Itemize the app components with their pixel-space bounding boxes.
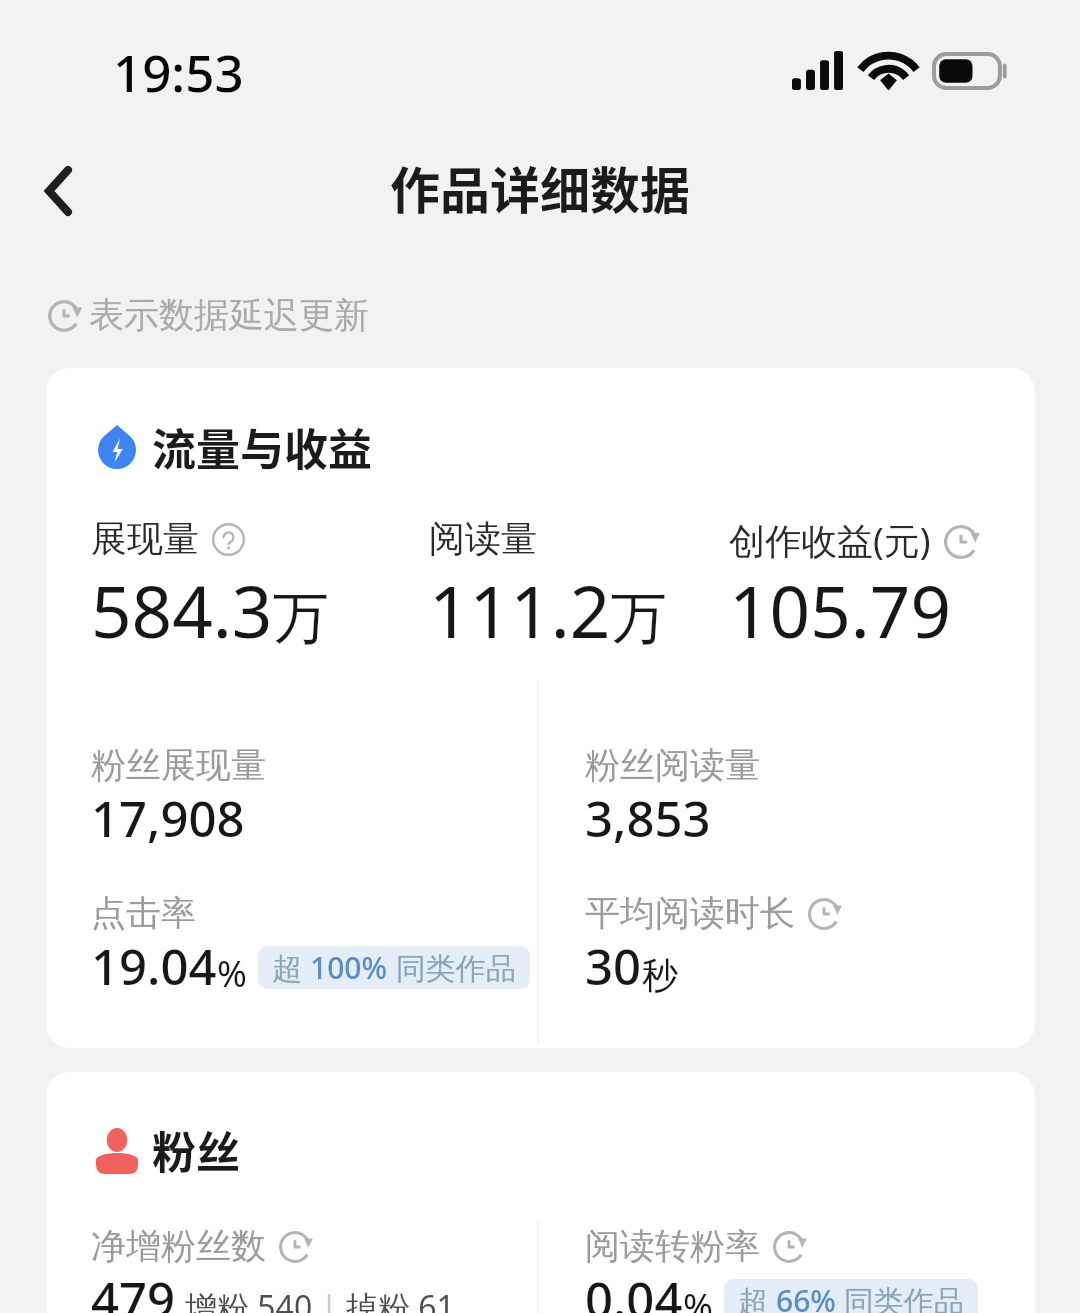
staticText: % [683, 1282, 713, 1313]
staticText: 阅读量 [429, 516, 537, 561]
button[interactable]: Back [0, 144, 116, 238]
staticText: 掉粉 61 [346, 1285, 455, 1313]
staticText: % [217, 949, 247, 998]
staticText: 增粉 540 [185, 1285, 313, 1313]
button[interactable]: 流量与收益 [46, 368, 1035, 1048]
button[interactable]: 粉丝 [46, 1072, 1035, 1313]
button[interactable]: 创作收益(元) [729, 516, 978, 565]
button[interactable]: 阅读转粉率 [585, 1224, 805, 1268]
staticText: 阅读转粉率 [585, 1224, 760, 1268]
button[interactable]: 粉丝阅读量 [585, 743, 760, 787]
button[interactable]: What is 展现量 [212, 523, 245, 556]
button[interactable]: 阅读量 [429, 516, 537, 561]
staticText: 表示数据延迟更新 [89, 293, 369, 337]
staticText: 100% [310, 947, 388, 988]
staticText: 105.79 [729, 562, 952, 659]
staticText: 同类作品 [836, 1280, 964, 1313]
staticText: 584.3 [91, 562, 273, 659]
staticText: 30 [585, 933, 642, 1000]
staticText: 111.2 [429, 562, 611, 659]
staticText: 19.04 [91, 933, 217, 1000]
staticText: 19:53 [113, 37, 244, 106]
button[interactable]: 展现量 [91, 516, 245, 561]
staticText: 流量与收益 [152, 415, 372, 479]
staticText: 粉丝展现量 [91, 743, 266, 787]
button[interactable]: 平均阅读时长 [585, 891, 840, 935]
button[interactable]: 净增粉丝数 [91, 1224, 311, 1268]
other: Delayed data [773, 1231, 805, 1263]
button[interactable]: 点击率 [91, 891, 196, 935]
staticText: 万 [273, 583, 329, 654]
staticText: 粉丝 [152, 1118, 240, 1182]
staticText: 点击率 [91, 891, 196, 935]
staticText: | [313, 1285, 346, 1313]
button[interactable]: 超 [724, 1279, 978, 1313]
staticText: 创作收益(元) [729, 516, 931, 565]
button[interactable]: 表示数据延迟更新 [44, 291, 356, 341]
staticText: 万 [611, 583, 667, 654]
staticText: 秒 [642, 953, 678, 998]
staticText: 展现量 [91, 516, 199, 561]
staticText: 平均阅读时长 [585, 891, 795, 935]
staticText: 17,908 [91, 785, 245, 852]
other: Delayed data [279, 1231, 311, 1263]
staticText: 0.04 [585, 1266, 683, 1313]
staticText: 作品详细数据 [390, 151, 690, 223]
button[interactable]: 超 [258, 946, 530, 989]
staticText: 479 [91, 1266, 176, 1313]
staticText: 超 [272, 947, 310, 988]
staticText: 同类作品 [388, 947, 516, 988]
button[interactable]: 粉丝展现量 [91, 743, 266, 787]
staticText: 3,853 [585, 785, 711, 852]
staticText: 粉丝阅读量 [585, 743, 760, 787]
staticText: 超 [738, 1280, 776, 1313]
staticText: 66% [776, 1280, 836, 1313]
other: Delayed data [944, 525, 978, 559]
other: Delayed data [808, 898, 840, 930]
staticText: 净增粉丝数 [91, 1224, 266, 1268]
